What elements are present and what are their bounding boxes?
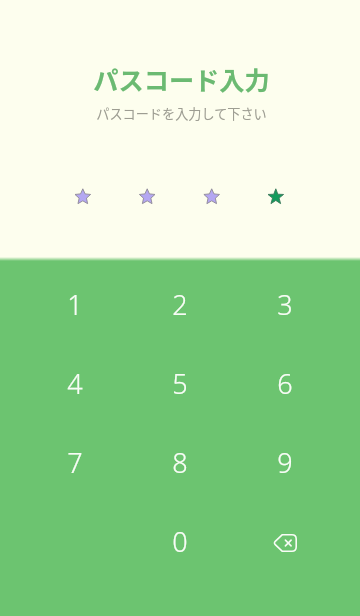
button[interactable]: 9 xyxy=(232,423,337,502)
staticText: 8 xyxy=(172,444,188,481)
button[interactable]: Delete xyxy=(232,502,337,581)
staticText: 5 xyxy=(172,365,188,402)
staticText: 7 xyxy=(67,444,83,481)
staticText: 9 xyxy=(277,444,293,481)
button[interactable]: 4 xyxy=(23,344,127,423)
staticText: 4 xyxy=(67,365,83,402)
button[interactable]: 0 xyxy=(127,502,232,581)
button[interactable]: 7 xyxy=(23,423,127,502)
staticText: パスコードを入力して下さい xyxy=(96,104,267,123)
staticText: 2 xyxy=(172,286,188,323)
button[interactable]: 3 xyxy=(232,265,337,344)
staticText: 1 xyxy=(67,286,83,323)
staticText: 0 xyxy=(172,523,188,560)
staticText: パスコード入力 xyxy=(93,61,270,97)
staticText: 3 xyxy=(277,286,293,323)
button[interactable]: 8 xyxy=(127,423,232,502)
button[interactable]: 2 xyxy=(127,265,232,344)
button[interactable]: 5 xyxy=(127,344,232,423)
button[interactable]: 6 xyxy=(232,344,337,423)
button[interactable]: 1 xyxy=(23,265,127,344)
staticText: 6 xyxy=(277,365,293,402)
